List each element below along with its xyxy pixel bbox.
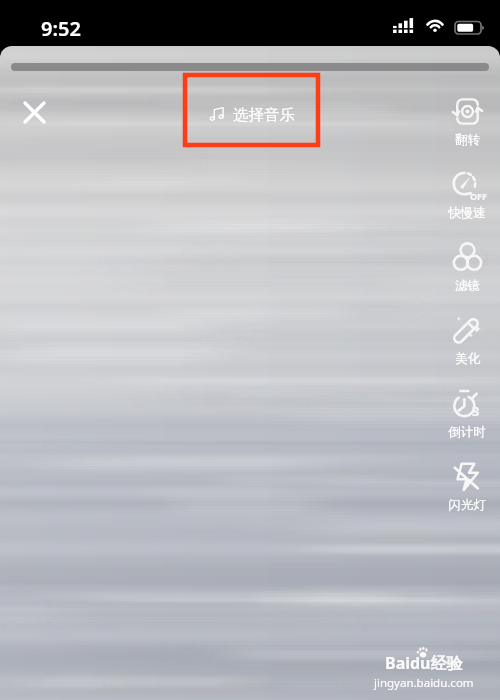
staticText: 3 — [472, 402, 480, 420]
button[interactable]: Countdown — [436, 388, 498, 461]
button[interactable]: 选择音乐 — [207, 103, 297, 127]
button[interactable]: Flash — [436, 461, 498, 534]
staticText: 翻转 — [455, 132, 480, 148]
staticText: 美化 — [455, 351, 480, 367]
button[interactable]: Beautify — [436, 315, 498, 388]
staticText: OFF — [470, 190, 488, 202]
button[interactable]: Close — [13, 91, 55, 133]
button[interactable]: Filter — [436, 242, 498, 315]
staticText: 9:52 — [41, 15, 81, 42]
button[interactable]: Speed — [436, 169, 498, 242]
button[interactable]: Flip camera — [436, 96, 498, 169]
staticText: 选择音乐 — [233, 105, 295, 125]
staticText: 快慢速 — [448, 205, 486, 221]
staticText: Baidu经验 — [385, 652, 463, 674]
staticText: 闪光灯 — [448, 497, 486, 513]
staticText: 滤镜 — [455, 278, 480, 294]
staticText: jingyan.baidu.com — [374, 675, 474, 691]
staticText: 倒计时 — [448, 424, 486, 440]
